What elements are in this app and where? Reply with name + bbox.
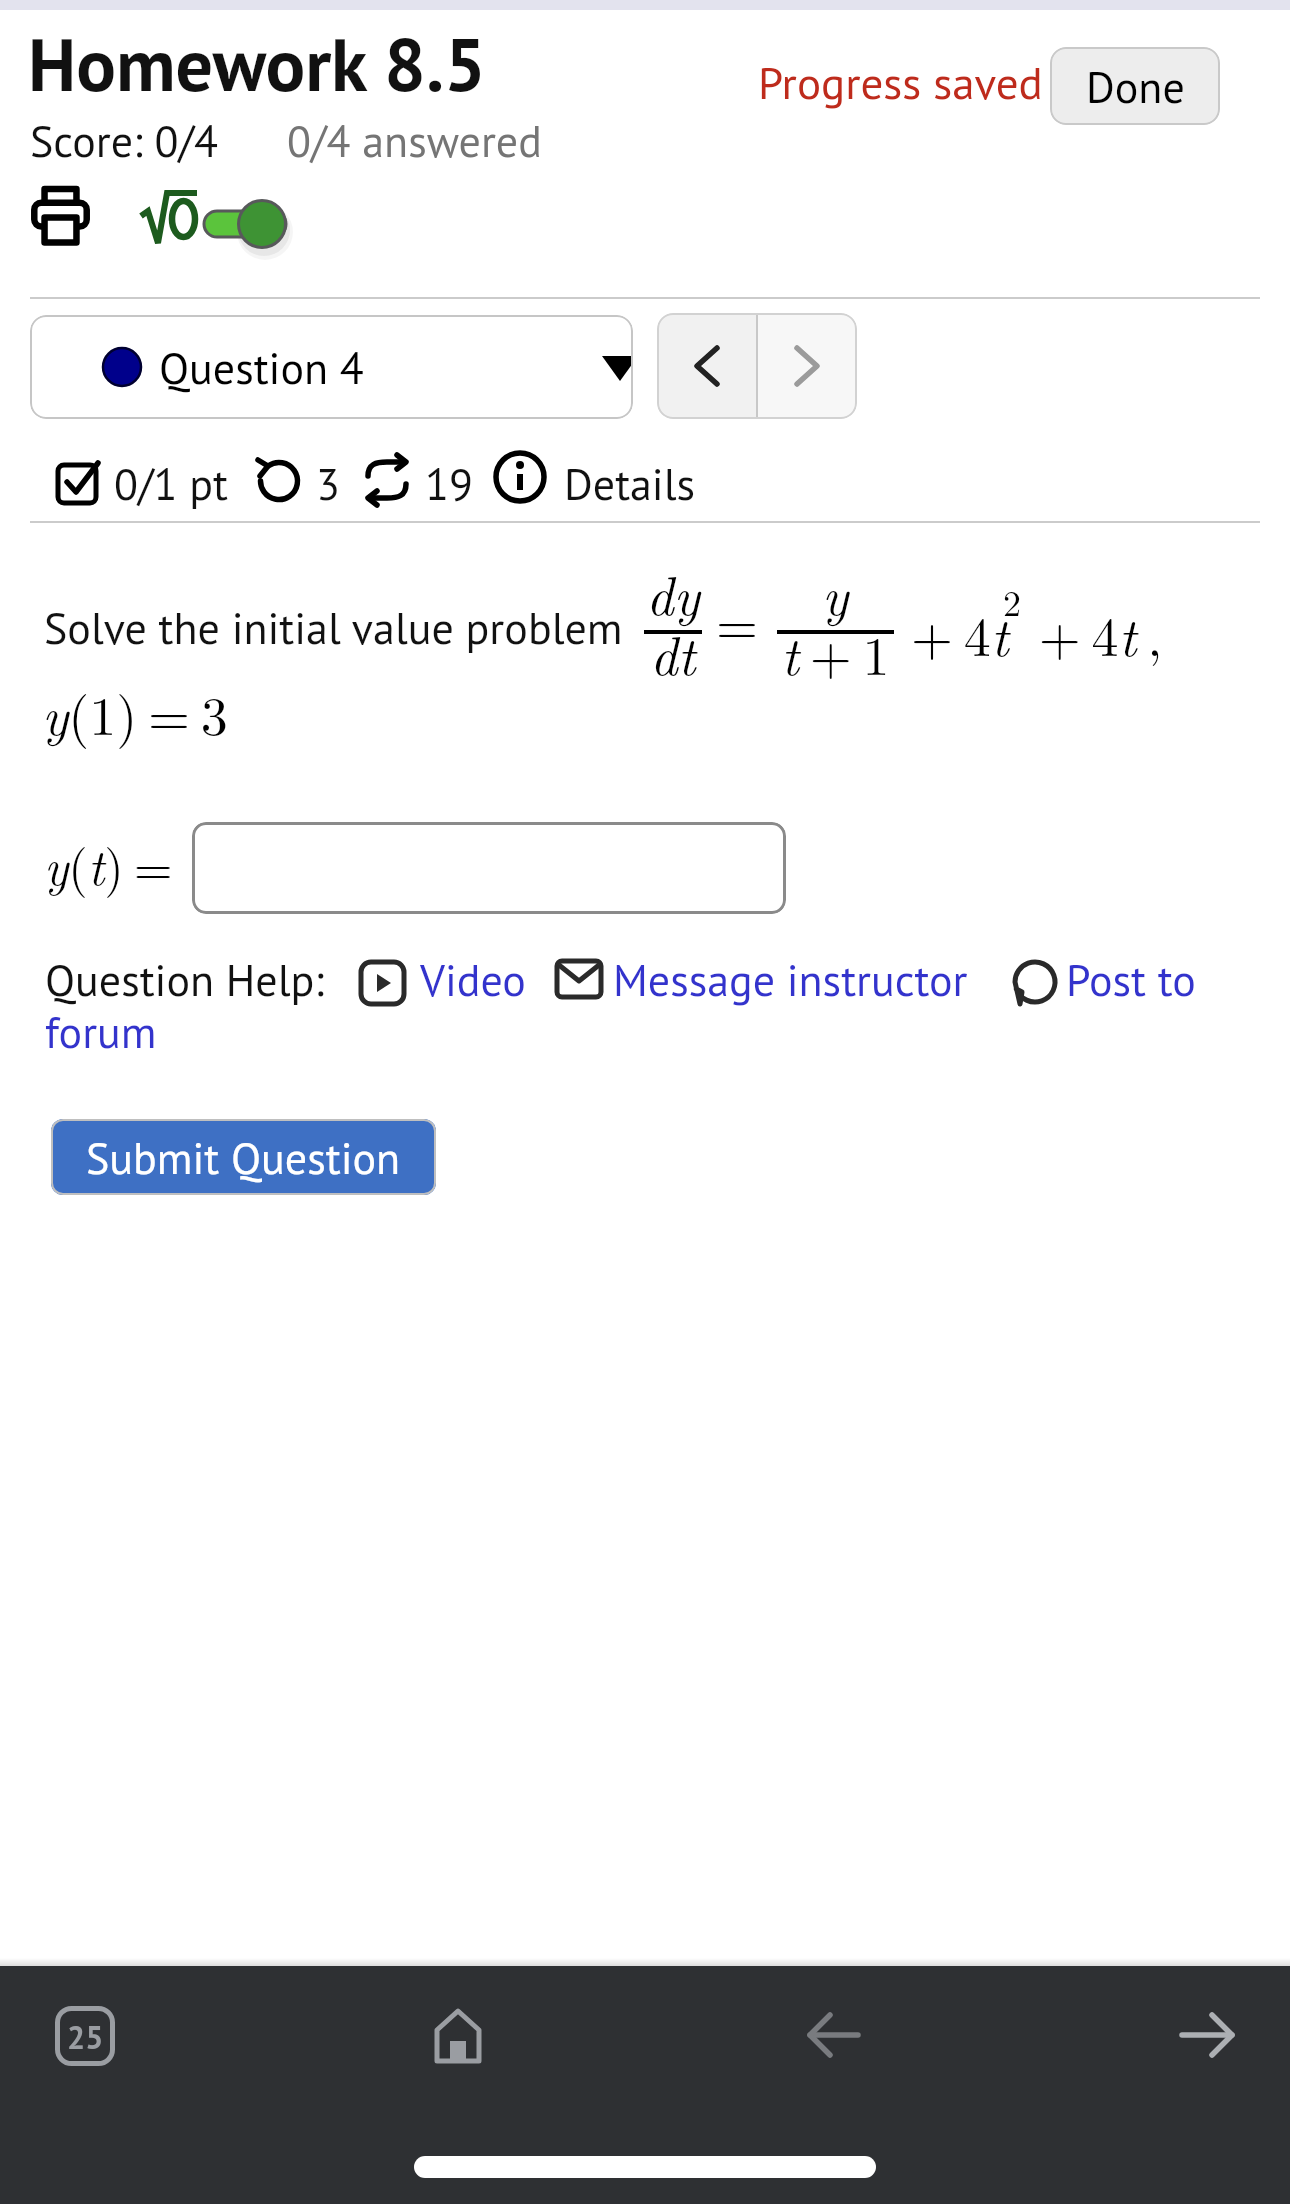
staticText: 2 <box>1003 575 1021 626</box>
staticText: Question Help: <box>45 951 325 1008</box>
staticText: Solve the initial value problem <box>44 599 623 656</box>
button[interactable] <box>806 2011 862 2059</box>
button[interactable]: Question 4 <box>30 315 633 419</box>
staticText: Submit Question <box>86 1129 401 1186</box>
staticText: 0/4 answered <box>287 112 542 169</box>
button[interactable]: Post to <box>0 0 130 57</box>
staticText: y <box>822 554 849 630</box>
staticText: Done <box>1086 58 1185 115</box>
staticText: t + 1 <box>781 614 890 691</box>
staticText: y(t) = <box>44 829 173 900</box>
button[interactable]: Done <box>1050 47 1220 125</box>
button[interactable]: 25 <box>55 2006 115 2066</box>
staticText: Progress saved <box>758 53 1043 111</box>
staticText: Question 4 <box>159 339 364 396</box>
staticText: Homework 8.5 <box>28 16 487 112</box>
staticText: Score: 0/4 <box>30 112 219 169</box>
staticText: 19 <box>425 455 473 512</box>
staticText: = <box>716 583 759 660</box>
button[interactable]: forum <box>0 0 112 57</box>
button[interactable]: Submit Question <box>51 1119 436 1195</box>
staticText: 0/1 pt <box>114 455 229 512</box>
staticText: Details <box>564 455 696 512</box>
staticText: dy <box>646 554 700 630</box>
button[interactable] <box>192 822 786 914</box>
button[interactable] <box>493 450 547 504</box>
button[interactable]: Message instructor <box>0 0 355 57</box>
staticText: + 4t , <box>1028 595 1163 672</box>
button[interactable] <box>758 313 857 419</box>
button[interactable] <box>200 196 292 256</box>
staticText: dt <box>650 614 696 690</box>
staticText: 25 <box>67 2016 104 2057</box>
button[interactable]: Video <box>0 0 106 57</box>
staticText: + 4t <box>911 595 1009 672</box>
staticText: 3 <box>316 455 340 512</box>
button[interactable] <box>434 2005 482 2065</box>
button[interactable] <box>1178 2011 1236 2059</box>
button[interactable] <box>657 313 757 419</box>
staticText: y(1) = 3 <box>42 674 228 751</box>
